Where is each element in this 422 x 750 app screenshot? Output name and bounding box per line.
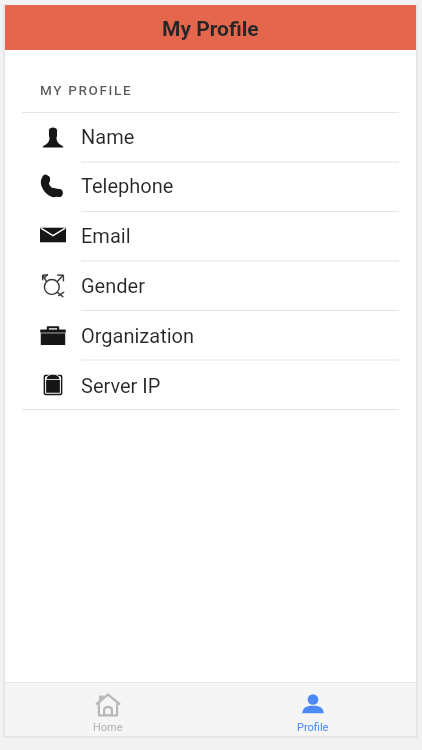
button[interactable]: Server IP <box>5 360 416 410</box>
button[interactable]: Telephone <box>5 161 416 210</box>
staticText: Name <box>81 125 135 148</box>
staticText: Server IP <box>81 374 161 397</box>
button[interactable]: Organization <box>5 310 416 360</box>
staticText: Gender <box>81 274 145 297</box>
button[interactable]: Name <box>5 112 416 161</box>
button[interactable]: Profile <box>210 682 416 736</box>
staticText: Home <box>93 721 123 733</box>
staticText: My Profile <box>162 17 259 42</box>
staticText: Organization <box>81 324 195 347</box>
staticText: Email <box>81 224 131 247</box>
button[interactable]: Gender <box>5 260 416 310</box>
button[interactable]: Home <box>5 682 210 736</box>
staticText: MY PROFILE <box>40 82 133 98</box>
button[interactable]: Email <box>5 210 416 260</box>
staticText: Telephone <box>81 174 174 197</box>
staticText: Profile <box>297 721 329 733</box>
